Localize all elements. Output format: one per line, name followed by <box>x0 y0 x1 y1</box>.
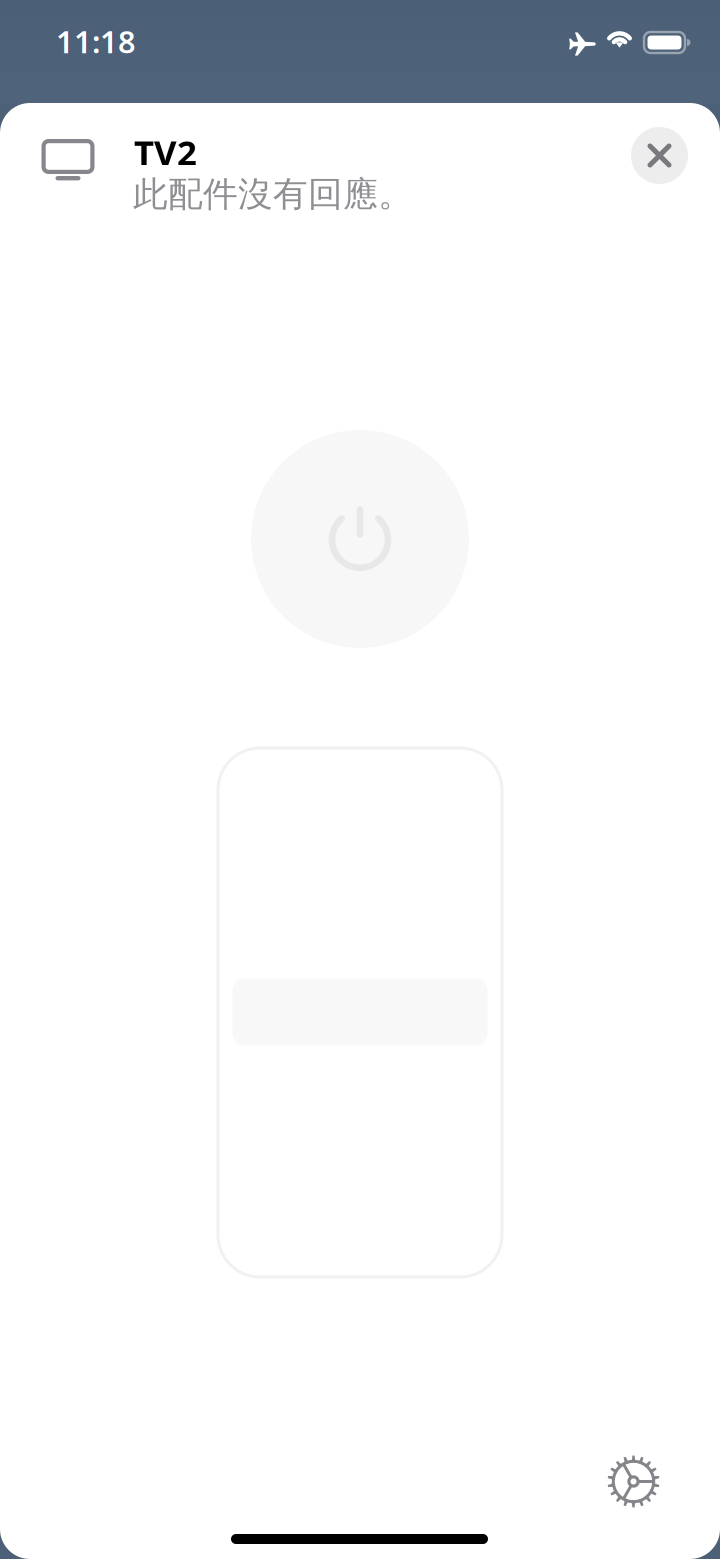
button[interactable]: Close <box>631 127 688 184</box>
staticText: 此配件沒有回應。 <box>133 173 413 216</box>
staticText: TV2 <box>134 129 197 175</box>
button[interactable]: Settings <box>595 1443 672 1520</box>
staticText: 11:18 <box>56 21 136 62</box>
